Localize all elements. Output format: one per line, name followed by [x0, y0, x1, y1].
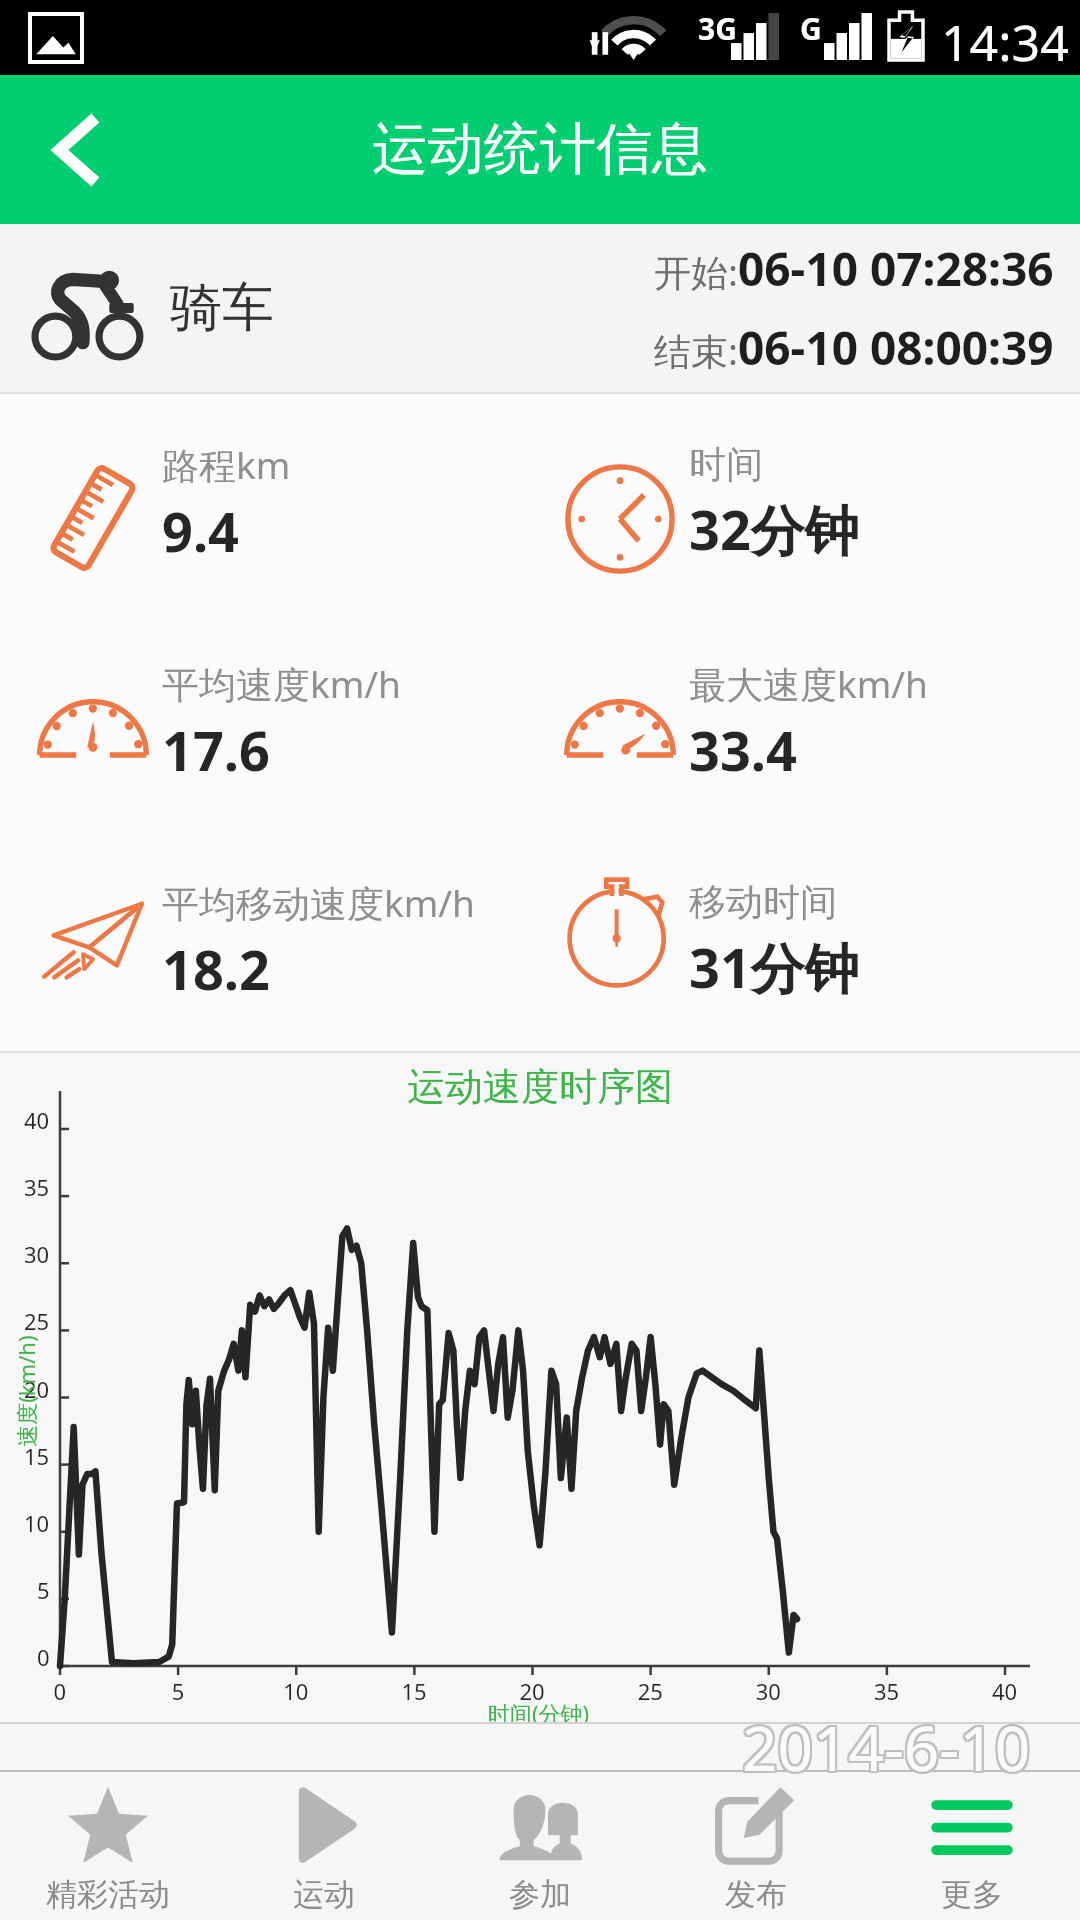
staticText: 06-10 07:28:36	[738, 237, 1054, 300]
staticText: 移动时间	[689, 879, 837, 926]
button[interactable]: 更多	[864, 1772, 1080, 1920]
staticText: 2014-6-10	[742, 1705, 1031, 1789]
staticText: 2014-6-10	[742, 1703, 1031, 1787]
staticText: 06-10 08:00:39	[738, 316, 1054, 379]
staticText: 运动	[293, 1875, 355, 1914]
staticText: 更多	[941, 1875, 1003, 1914]
staticText: 骑车	[170, 275, 274, 341]
staticText: 运动速度时序图	[407, 1063, 673, 1111]
staticText: 时间	[689, 441, 763, 488]
staticText: 3G	[698, 8, 737, 49]
staticText: 14:34	[941, 8, 1069, 76]
staticText: 精彩活动	[46, 1875, 170, 1914]
button[interactable]: 精彩活动	[0, 1772, 216, 1920]
staticText: 2014-6-10	[740, 1705, 1029, 1789]
staticText: 2014-6-10	[740, 1707, 1029, 1791]
staticText: 9.4	[162, 494, 239, 568]
staticText: 2014-6-10	[740, 1704, 1029, 1788]
staticText: 2014-6-10	[744, 1706, 1033, 1790]
staticText: 开始:	[654, 246, 738, 297]
staticText: 31分钟	[689, 930, 859, 1004]
staticText: 2014-6-10	[744, 1703, 1033, 1787]
staticText: 33.4	[689, 713, 797, 787]
staticText: 17.6	[162, 713, 270, 787]
staticText: 发布	[725, 1875, 787, 1914]
staticText: 平均速度km/h	[162, 658, 401, 709]
staticText: 2014-6-10	[740, 1706, 1029, 1790]
staticText: 路程km	[162, 439, 291, 490]
staticText: 平均移动速度km/h	[162, 877, 475, 928]
staticText: 运动统计信息	[372, 114, 708, 185]
staticText: 18.2	[162, 932, 270, 1006]
staticText: 2014-6-10	[741, 1703, 1030, 1787]
staticText: 参加	[509, 1875, 571, 1914]
staticText: 2014-6-10	[744, 1705, 1033, 1789]
staticText: 2014-6-10	[744, 1704, 1033, 1788]
button[interactable]: 发布	[648, 1772, 864, 1920]
staticText: 2014-6-10	[742, 1707, 1031, 1791]
staticText: 最大速度km/h	[689, 658, 928, 709]
button[interactable]: 运动	[216, 1772, 432, 1920]
staticText: 2014-6-10	[743, 1703, 1032, 1787]
staticText: 2014-6-10	[741, 1707, 1030, 1791]
button[interactable]: Back	[22, 95, 132, 205]
staticText: 2014-6-10	[743, 1707, 1032, 1791]
button[interactable]: 参加	[432, 1772, 648, 1920]
staticText: 结束:	[654, 325, 738, 376]
staticText: 2014-6-10	[744, 1707, 1033, 1791]
staticText: 32分钟	[689, 492, 859, 566]
staticText: G	[800, 8, 822, 49]
staticText: 2014-6-10	[740, 1703, 1029, 1787]
